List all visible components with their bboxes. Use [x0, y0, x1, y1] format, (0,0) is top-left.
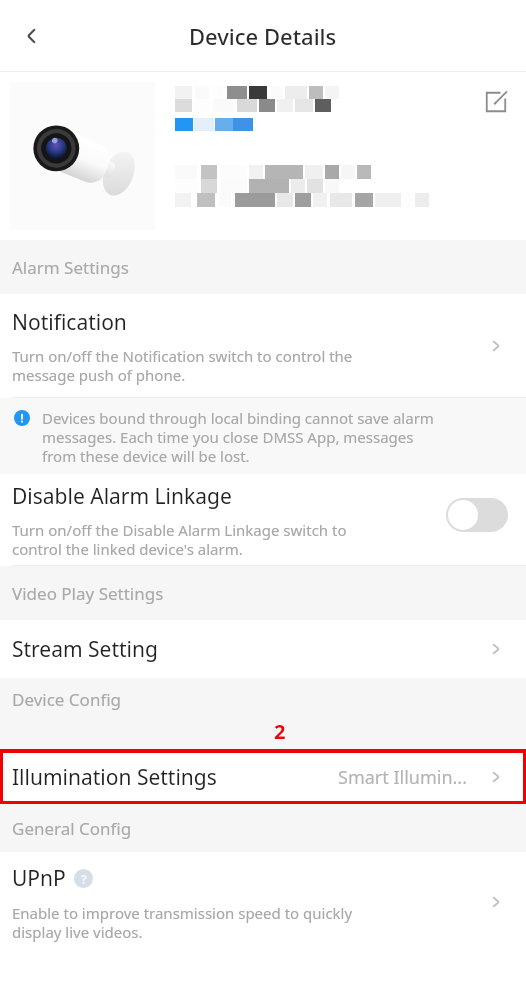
staticText: Enable to improve transmission speed to … [12, 903, 353, 942]
button[interactable]: Illumination Settings [0, 750, 526, 804]
button[interactable]: Notification [0, 294, 526, 398]
button[interactable]: UPnP help [74, 869, 93, 888]
button[interactable]: Device snapshot [10, 82, 155, 230]
button[interactable]: Stream Setting [0, 620, 526, 678]
staticText: Device Config [12, 688, 122, 711]
staticText: Notification [12, 308, 127, 337]
staticText: Turn on/off the Disable Alarm Linkage sw… [12, 520, 347, 559]
staticText: Device Details [189, 21, 337, 51]
staticText: Smart Illumin... [338, 765, 468, 790]
staticText: Alarm Settings [12, 256, 129, 279]
button[interactable]: Edit device name [472, 78, 520, 126]
staticText: 2 [274, 718, 286, 745]
staticText: ? [81, 871, 87, 887]
staticText: Stream Setting [12, 635, 158, 664]
staticText: Video Play Settings [12, 582, 164, 605]
staticText: General Config [12, 817, 132, 840]
staticText: Turn on/off the Notification switch to c… [12, 346, 353, 385]
staticText: Illumination Settings [12, 763, 217, 792]
staticText: UPnP [12, 864, 66, 893]
staticText: Disable Alarm Linkage [12, 482, 232, 511]
button[interactable]: Disable Alarm Linkage [0, 474, 526, 566]
button[interactable]: Back [8, 12, 56, 60]
staticText: Devices bound through local binding cann… [42, 408, 434, 467]
button[interactable]: UPnP [0, 852, 526, 952]
button[interactable]: Disable Alarm Linkage toggle [446, 498, 508, 532]
